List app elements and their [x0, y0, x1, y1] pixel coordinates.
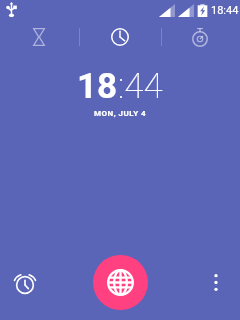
- staticText: :44: [118, 66, 163, 107]
- button[interactable]: More options: [197, 264, 234, 301]
- button[interactable]: World clock: [93, 255, 148, 310]
- staticText: MON, JULY 4: [94, 109, 147, 118]
- button[interactable]: Stopwatch: [160, 16, 240, 58]
- staticText: 18:44: [211, 4, 239, 17]
- staticText: 18: [77, 66, 118, 107]
- button[interactable]: Timer: [0, 16, 80, 58]
- button[interactable]: Clock: [80, 16, 160, 58]
- button[interactable]: Alarm: [6, 264, 43, 301]
